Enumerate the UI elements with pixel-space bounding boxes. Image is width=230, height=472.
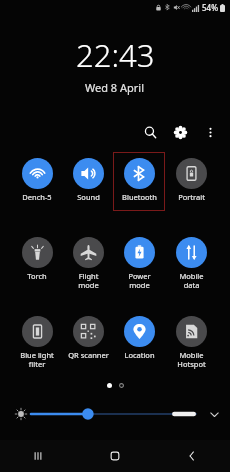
button[interactable]: Location [113,310,165,369]
staticText: 54% [202,2,218,13]
button[interactable]: Torch [11,231,63,290]
button[interactable]: Blue light filter [11,310,63,369]
staticText: Location [124,350,155,360]
button[interactable]: Recents [0,440,76,472]
button[interactable]: Sound [62,152,114,211]
button[interactable]: Mobile data [165,231,217,290]
staticText: Wed 8 April [85,80,145,95]
staticText: Torch [27,271,47,281]
staticText: Flight mode [78,271,99,290]
staticText: Dench-5 [22,192,52,202]
button[interactable]: Back [153,440,230,472]
button[interactable]: QR scanner [62,310,114,369]
button[interactable]: Flight mode [62,231,114,290]
staticText: Bluetooth [122,192,157,202]
staticText: 22:43 [76,34,155,76]
button[interactable]: More options [198,120,222,144]
staticText: Power mode [128,271,151,290]
button[interactable]: Home [76,440,153,472]
button[interactable]: Mobile Hotspot [165,310,217,369]
staticText: Portrait [178,192,205,202]
button[interactable]: Power mode [113,231,165,290]
staticText: Mobile Hotspot [177,350,206,369]
button[interactable]: Portrait [165,152,217,211]
button[interactable]: Expand [204,404,224,424]
button[interactable]: Settings [168,120,192,144]
staticText: QR scanner [68,350,109,360]
button[interactable]: Dench-5 [11,152,63,211]
staticText: Mobile data [179,271,204,290]
staticText: Blue light filter [20,350,54,369]
button[interactable]: Bluetooth [113,152,165,211]
staticText: Sound [77,192,100,202]
button[interactable]: Search [138,120,162,144]
button[interactable]: Brightness [12,405,30,423]
button[interactable]: Brightness slider [31,406,196,422]
